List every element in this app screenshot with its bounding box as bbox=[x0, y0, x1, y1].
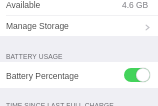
button[interactable]: Manage Storage bbox=[0, 15, 158, 36]
button[interactable]: Battery Percentage toggle bbox=[124, 68, 150, 82]
button[interactable]: Available bbox=[0, 0, 158, 15]
staticText: Battery Percentage bbox=[6, 71, 79, 80]
staticText: Manage Storage bbox=[6, 21, 69, 30]
staticText: BATTERY USAGE bbox=[6, 53, 63, 60]
staticText: TIME SINCE LAST FULL CHARGE bbox=[6, 102, 114, 106]
staticText: Available bbox=[6, 0, 41, 9]
staticText: 4.6 GB bbox=[122, 0, 149, 9]
button[interactable]: Battery Percentage bbox=[0, 62, 158, 88]
